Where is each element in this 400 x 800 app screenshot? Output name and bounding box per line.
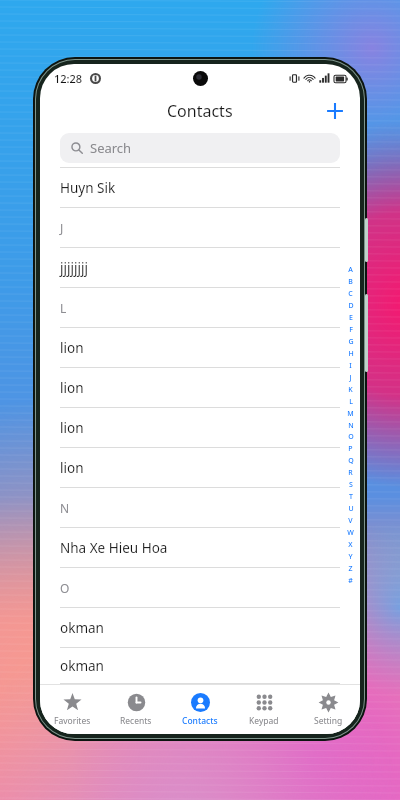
button[interactable]: Z: [344, 564, 357, 574]
staticText: J: [60, 220, 64, 236]
button[interactable]: lion: [40, 408, 360, 448]
staticText: 12:28: [54, 71, 83, 86]
button[interactable]: lion: [40, 448, 360, 488]
button[interactable]: B: [344, 277, 357, 287]
button[interactable]: H: [344, 349, 357, 359]
staticText: I: [349, 361, 352, 371]
staticText: C: [348, 289, 353, 299]
staticText: R: [348, 468, 353, 478]
button[interactable]: Add contact: [318, 94, 352, 128]
staticText: jjjjjjjj: [60, 259, 88, 277]
button[interactable]: W: [344, 528, 357, 538]
staticText: okman: [60, 619, 104, 637]
staticText: P: [348, 444, 353, 454]
button[interactable]: jjjjjjjj: [40, 248, 360, 288]
button[interactable]: Y: [344, 552, 357, 562]
staticText: U: [348, 504, 354, 514]
button[interactable]: Nha Xe Hieu Hoa: [40, 528, 360, 568]
staticText: T: [349, 492, 353, 502]
staticText: lion: [60, 339, 84, 357]
staticText: S: [349, 480, 353, 490]
staticText: Contacts: [167, 100, 233, 122]
staticText: L: [60, 300, 67, 316]
button[interactable]: Search: [60, 133, 340, 163]
staticText: H: [348, 349, 354, 359]
button[interactable]: Q: [344, 456, 357, 466]
button[interactable]: J: [344, 373, 357, 383]
staticText: Contacts: [182, 715, 218, 727]
staticText: Search: [90, 139, 132, 157]
staticText: okman: [60, 657, 104, 675]
button[interactable]: M: [344, 409, 357, 419]
staticText: Y: [348, 552, 353, 562]
staticText: A: [348, 265, 353, 275]
button[interactable]: Recents: [104, 685, 168, 734]
button[interactable]: lion: [40, 328, 360, 368]
button[interactable]: P: [344, 444, 357, 454]
button[interactable]: R: [344, 468, 357, 478]
button[interactable]: X: [344, 540, 357, 550]
button[interactable]: Huyn Sik: [40, 168, 360, 208]
staticText: Q: [348, 456, 354, 466]
staticText: M: [347, 409, 354, 419]
staticText: O: [60, 580, 70, 596]
button[interactable]: L: [344, 397, 357, 407]
button[interactable]: Contacts: [168, 685, 232, 734]
staticText: N: [60, 500, 70, 516]
button[interactable]: L: [40, 288, 360, 328]
button[interactable]: G: [344, 337, 357, 347]
button[interactable]: T: [344, 492, 357, 502]
button[interactable]: F: [344, 325, 357, 335]
staticText: F: [349, 325, 353, 335]
staticText: W: [347, 528, 354, 538]
button[interactable]: N: [40, 488, 360, 528]
button[interactable]: O: [40, 568, 360, 608]
staticText: N: [348, 421, 354, 431]
button[interactable]: U: [344, 504, 357, 514]
staticText: Setting: [314, 715, 343, 727]
staticText: K: [348, 385, 353, 395]
staticText: Huyn Sik: [60, 179, 116, 197]
button[interactable]: S: [344, 480, 357, 490]
staticText: Keypad: [249, 715, 279, 727]
button[interactable]: A: [344, 265, 357, 275]
button[interactable]: J: [40, 208, 360, 248]
staticText: Favorites: [54, 715, 91, 727]
button[interactable]: O: [344, 432, 357, 442]
button[interactable]: E: [344, 313, 357, 323]
staticText: Nha Xe Hieu Hoa: [60, 539, 168, 557]
button[interactable]: I: [344, 361, 357, 371]
staticText: Z: [348, 564, 353, 574]
staticText: lion: [60, 379, 84, 397]
button[interactable]: Favorites: [40, 685, 104, 734]
button[interactable]: C: [344, 289, 357, 299]
button[interactable]: Keypad: [232, 685, 296, 734]
staticText: V: [348, 516, 353, 526]
staticText: D: [348, 301, 354, 311]
staticText: lion: [60, 459, 84, 477]
button[interactable]: Setting: [296, 685, 360, 734]
button[interactable]: D: [344, 301, 357, 311]
button[interactable]: lion: [40, 368, 360, 408]
staticText: G: [348, 337, 354, 347]
button[interactable]: okman: [40, 648, 360, 684]
staticText: Recents: [120, 715, 152, 727]
button[interactable]: N: [344, 421, 357, 431]
staticText: lion: [60, 419, 84, 437]
staticText: O: [348, 432, 354, 442]
staticText: #: [348, 576, 353, 586]
staticText: L: [349, 397, 353, 407]
staticText: E: [349, 313, 353, 323]
button[interactable]: okman: [40, 608, 360, 648]
button[interactable]: V: [344, 516, 357, 526]
button[interactable]: K: [344, 385, 357, 395]
staticText: X: [348, 540, 353, 550]
staticText: J: [349, 373, 352, 383]
button[interactable]: #: [344, 576, 357, 586]
staticText: B: [348, 277, 353, 287]
